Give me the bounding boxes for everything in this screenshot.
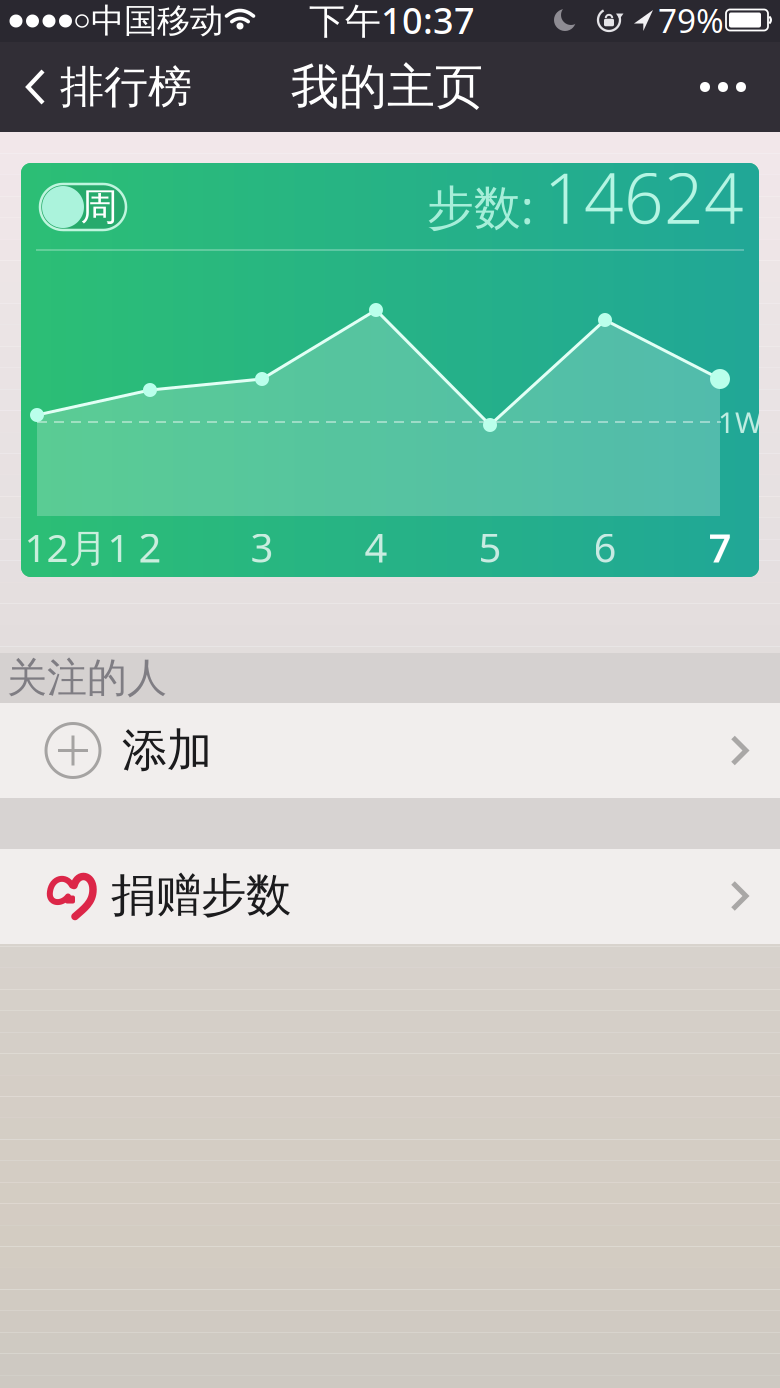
staticText: 6	[593, 520, 616, 573]
staticText: 添加	[122, 723, 212, 778]
staticText: 1W	[718, 402, 762, 441]
staticText: 12月1	[24, 521, 129, 573]
staticText: 14624	[544, 151, 744, 243]
button[interactable]: 周/月切换	[40, 184, 126, 230]
staticText: 7	[708, 520, 731, 573]
staticText: 4	[364, 520, 387, 573]
staticText: 排行榜	[60, 60, 192, 114]
button[interactable]: 排行榜	[18, 42, 198, 132]
staticText: 关注的人	[7, 653, 167, 702]
button[interactable]: 添加	[0, 703, 780, 798]
staticText: 2	[138, 520, 161, 573]
staticText: 79%	[658, 0, 724, 42]
staticText: 步数:	[427, 175, 534, 237]
staticText: 周	[80, 184, 117, 230]
staticText: 捐赠步数	[111, 868, 291, 923]
staticText: 5	[478, 520, 501, 573]
button[interactable]: More	[678, 42, 768, 132]
staticText: 3	[250, 520, 273, 573]
staticText: 中国移动	[91, 0, 223, 41]
button[interactable]: 捐赠步数	[0, 849, 780, 944]
staticText: 我的主页	[291, 57, 483, 116]
staticText: 下午10:37	[309, 0, 475, 44]
